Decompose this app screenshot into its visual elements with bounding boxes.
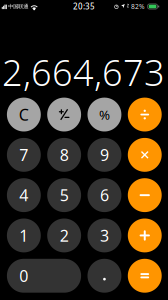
staticText: 3	[100, 225, 109, 246]
button[interactable]: Multiply	[128, 138, 162, 172]
staticText: 20:35	[73, 1, 95, 12]
staticText: C	[19, 104, 29, 125]
button[interactable]: 1	[7, 218, 41, 252]
staticText: 5	[60, 184, 69, 206]
staticText: 0	[19, 265, 28, 286]
button[interactable]: 8	[47, 138, 81, 172]
button[interactable]: 5	[47, 178, 81, 212]
staticText: 6	[100, 184, 109, 206]
button[interactable]: %	[87, 98, 121, 131]
staticText: 1	[19, 225, 28, 246]
staticText: 9	[100, 144, 109, 165]
button[interactable]: 0	[7, 259, 81, 293]
button[interactable]: Minus	[128, 178, 162, 212]
button[interactable]: 9	[87, 138, 121, 172]
staticText: 中国联通	[8, 3, 28, 10]
button[interactable]: Equals	[128, 259, 162, 293]
button[interactable]: Divide	[128, 98, 162, 131]
staticText: 4	[19, 184, 28, 206]
button[interactable]: 6	[87, 178, 121, 212]
staticText: 82%	[131, 2, 145, 11]
button[interactable]: 4	[7, 178, 41, 212]
button[interactable]: Plus	[128, 218, 162, 252]
staticText: 2	[60, 225, 69, 246]
button[interactable]: Decimal point	[87, 259, 121, 293]
button[interactable]: 3	[87, 218, 121, 252]
button[interactable]: 2	[47, 218, 81, 252]
button[interactable]: C	[7, 98, 41, 131]
button[interactable]: Plus minus	[47, 98, 81, 131]
staticText: %	[99, 106, 110, 123]
staticText: 2,664,673	[2, 48, 165, 96]
button[interactable]: 7	[7, 138, 41, 172]
staticText: 8	[60, 144, 69, 165]
staticText: 7	[19, 144, 28, 165]
